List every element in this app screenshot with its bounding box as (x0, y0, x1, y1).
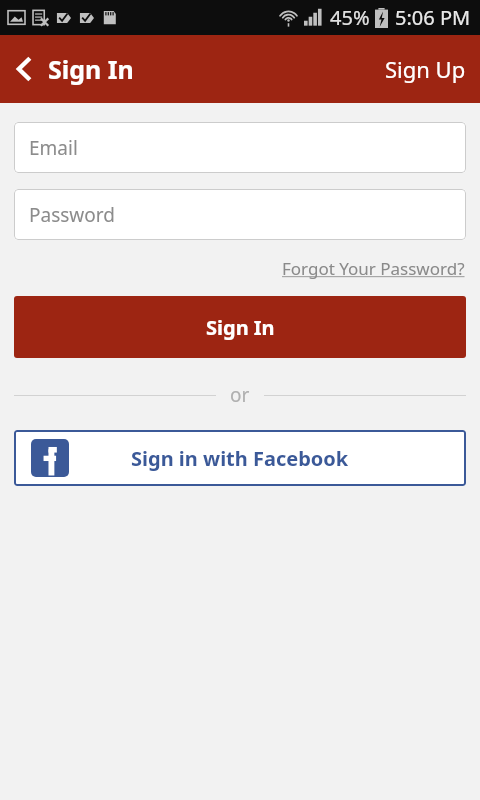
button[interactable]: Sign In (14, 296, 466, 358)
staticText: Sign in with Facebook (131, 445, 349, 472)
staticText: Password (29, 202, 115, 228)
other: Back (14, 54, 36, 84)
button[interactable]: Back (0, 44, 142, 94)
staticText: Sign In (48, 52, 134, 86)
staticText: Forgot Your Password? (282, 257, 465, 280)
button[interactable]: Sign Up (371, 44, 480, 94)
button[interactable]: Sign in with Facebook (14, 430, 466, 486)
button[interactable]: Forgot Your Password? (282, 255, 480, 282)
button[interactable]: Email (14, 122, 466, 173)
staticText: or (230, 382, 250, 408)
staticText: 5:06 PM (395, 4, 471, 31)
staticText: Sign Up (385, 54, 466, 84)
other: Facebook (31, 439, 69, 477)
staticText: 45% (330, 4, 370, 31)
staticText: Email (29, 135, 78, 161)
button[interactable]: Password (14, 189, 466, 240)
staticText: Sign In (206, 314, 275, 341)
